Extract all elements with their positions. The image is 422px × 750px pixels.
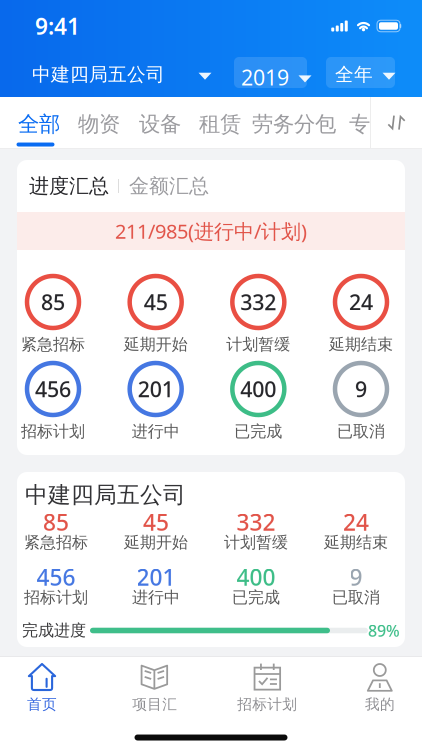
staticText: 物资 — [78, 111, 120, 137]
staticText: 456 — [35, 375, 71, 403]
button[interactable]: 进度汇总 — [29, 174, 109, 198]
staticText: 已完成 — [234, 422, 282, 441]
staticText: 招标计划 — [24, 588, 88, 607]
button[interactable]: 设备 — [139, 111, 181, 137]
staticText: 进行中 — [132, 422, 180, 441]
staticText: 招标计划 — [237, 695, 297, 713]
staticText: 201 — [136, 562, 175, 592]
button[interactable]: 项目汇 — [123, 663, 187, 713]
staticText: 85 — [41, 288, 65, 316]
staticText: 项目汇 — [132, 695, 177, 713]
staticText: 租赁 — [199, 111, 241, 137]
staticText: 211/985(进行中/计划) — [115, 218, 307, 244]
staticText: 45 — [144, 288, 168, 316]
staticText: 专业分 — [349, 111, 412, 137]
staticText: 全年 — [335, 63, 373, 86]
staticText: 2019 — [241, 63, 289, 91]
button[interactable]: 专业分 — [349, 111, 412, 137]
button[interactable]: 中建四局五公司 — [32, 63, 212, 86]
staticText: 完成进度 — [22, 621, 86, 640]
button[interactable]: 首页 — [10, 663, 74, 713]
button[interactable]: 劳务分包 — [252, 111, 336, 137]
staticText: 中建四局五公司 — [32, 63, 165, 86]
staticText: 延期结束 — [324, 533, 388, 552]
staticText: 招标计划 — [21, 422, 85, 441]
staticText: 332 — [236, 507, 275, 537]
staticText: 劳务分包 — [252, 111, 336, 137]
staticText: 9:41 — [35, 11, 80, 41]
staticText: 400 — [236, 562, 275, 592]
staticText: 计划暂缓 — [226, 335, 290, 354]
staticText: 85 — [43, 507, 69, 537]
button[interactable]: 招标计划 — [235, 663, 299, 713]
button[interactable]: 我的 — [348, 663, 412, 713]
staticText: 紧急招标 — [24, 533, 88, 552]
staticText: 已取消 — [332, 588, 380, 607]
button[interactable]: 排序 — [371, 97, 422, 148]
button[interactable]: 物资 — [78, 111, 120, 137]
staticText: 201 — [138, 375, 174, 403]
button[interactable]: 全部 — [18, 111, 60, 137]
staticText: 延期开始 — [124, 335, 188, 354]
button[interactable]: 2019 — [241, 63, 312, 91]
staticText: 89% — [368, 620, 400, 641]
staticText: 24 — [343, 507, 369, 537]
staticText: 首页 — [27, 695, 57, 713]
staticText: 我的 — [365, 695, 395, 713]
button[interactable]: 金额汇总 — [119, 174, 209, 198]
staticText: 计划暂缓 — [224, 533, 288, 552]
staticText: 全部 — [18, 111, 60, 137]
staticText: 延期开始 — [124, 533, 188, 552]
staticText: 紧急招标 — [21, 335, 85, 354]
staticText: 已取消 — [337, 422, 385, 441]
staticText: 24 — [349, 288, 373, 316]
staticText: 进行中 — [132, 588, 180, 607]
staticText: 456 — [36, 562, 75, 592]
staticText: 进度汇总 — [29, 174, 109, 198]
button[interactable]: 租赁 — [199, 111, 241, 137]
staticText: 中建四局五公司 — [25, 481, 186, 509]
staticText: 延期结束 — [329, 335, 393, 354]
staticText: 9 — [349, 562, 362, 592]
staticText: 已完成 — [232, 588, 280, 607]
button[interactable]: 全年 — [335, 63, 396, 86]
staticText: 金额汇总 — [129, 174, 209, 198]
staticText: 332 — [240, 288, 276, 316]
staticText: 9 — [355, 375, 367, 403]
staticText: 设备 — [139, 111, 181, 137]
staticText: 400 — [240, 375, 276, 403]
staticText: 45 — [143, 507, 169, 537]
